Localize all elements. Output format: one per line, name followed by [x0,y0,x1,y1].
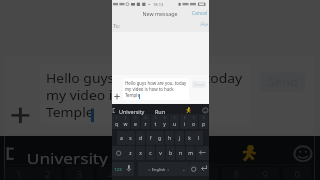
staticText: e [131,121,140,128]
staticText: n [176,150,185,157]
button[interactable]: v [156,146,165,160]
staticText: f [146,135,155,142]
staticText: j [175,135,184,142]
button[interactable]: g [155,131,164,145]
button[interactable]: Enter [199,162,209,176]
button[interactable]: Cancel [190,8,209,19]
staticText: 7 [190,169,219,180]
button[interactable]: 7 [170,115,179,129]
button[interactable]: 7 [190,166,219,180]
button[interactable]: 4 [141,115,150,129]
button[interactable]: z [126,146,135,160]
staticText: 7 [170,116,179,120]
button[interactable]: Hello guys how are you, today my video i… [40,64,251,125]
button[interactable]: Settings [189,162,199,176]
button[interactable]: a [117,131,126,145]
button[interactable]: 6 [160,115,169,129]
button[interactable]: Backspace [196,146,209,160]
button[interactable]: b [166,146,175,160]
button[interactable]: 1 [112,115,121,129]
button[interactable]: 8 [180,115,189,129]
button[interactable]: Hello guys how are you, today my video i… [123,78,189,100]
button[interactable]: f [146,131,155,145]
button[interactable]: Emoji [202,106,209,115]
button[interactable]: 2 [121,115,130,129]
staticText: 1 [112,116,121,120]
staticText: University [27,147,110,166]
button[interactable]: 5 [129,166,158,180]
button[interactable]: 4 [97,166,126,180]
button[interactable]: Send [192,81,206,88]
button[interactable]: 1 [4,166,33,180]
staticText: Send [192,82,206,87]
button[interactable]: 0 [199,115,208,129]
staticText: g [155,135,164,142]
button[interactable]: 9 [189,115,198,129]
button[interactable]: c [146,146,155,160]
staticText: 2 [121,116,130,120]
button[interactable]: Emoji [292,141,315,166]
staticText: 6 [160,116,169,120]
button[interactable]: n [176,146,185,160]
button[interactable]: 5 [151,115,160,129]
staticText: 18:13 [153,2,164,7]
staticText: 3 [131,116,140,120]
button[interactable]: x [136,146,145,160]
button[interactable]: Add attachment [8,100,33,130]
staticText: z [126,150,135,157]
button[interactable]: Sticker [238,141,260,166]
staticText: Run [155,108,166,115]
button[interactable]: Add contact [199,20,209,31]
button[interactable]: m [186,146,195,160]
button[interactable]: Sticker [185,106,192,115]
staticText: University [119,108,145,115]
button[interactable]: 6 [158,166,187,180]
staticText: l [194,135,203,142]
button[interactable]: d [136,131,145,145]
button[interactable]: s [126,131,135,145]
staticText: o [189,121,198,128]
staticText: ‹ English › [138,167,179,172]
staticText: 8 [180,116,189,120]
button[interactable]: 123 [112,162,124,176]
staticText: a [117,135,126,142]
staticText: 9 [189,116,198,120]
button[interactable]: k [185,131,194,145]
staticText: y [160,121,169,128]
staticText: 5 [151,116,160,120]
staticText: . [179,165,189,172]
staticText: w [121,121,130,128]
button[interactable]: Add attachment [113,91,121,102]
button[interactable]: l [194,131,203,145]
staticText: q [112,121,121,128]
button[interactable]: ‹ English › [138,162,179,176]
button[interactable]: Run [153,105,169,114]
staticText: k [185,135,194,142]
staticText: New message [125,10,195,17]
button[interactable]: . [179,162,189,176]
staticText: t [151,121,160,128]
button[interactable]: Run [136,139,187,164]
button[interactable]: 3 [131,115,140,129]
button[interactable]: Voice input [124,162,134,176]
button[interactable]: University [24,139,120,164]
button[interactable]: University [118,105,148,114]
staticText: m [186,150,195,157]
staticText: 6 [158,169,187,180]
button[interactable]: j [175,131,184,145]
staticText: i [180,121,189,128]
staticText: 123 [112,167,124,173]
button[interactable]: Shift [112,146,126,160]
button[interactable]: h [165,131,174,145]
